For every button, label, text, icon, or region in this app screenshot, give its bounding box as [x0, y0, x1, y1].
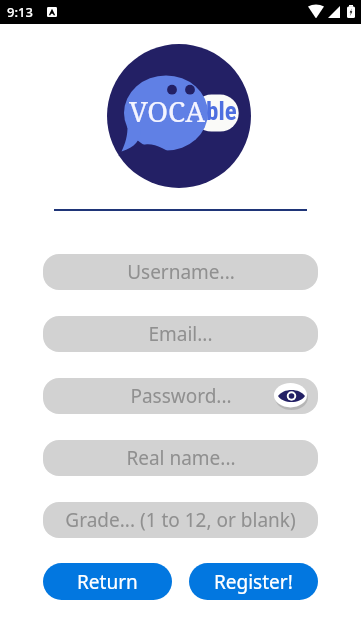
staticText: ble: [206, 97, 237, 126]
staticText: Grade... (1 to 12, or blank): [65, 507, 296, 533]
staticText: Username...: [127, 259, 235, 285]
staticText: Password...: [130, 383, 232, 409]
button[interactable]: Return: [43, 563, 172, 600]
button[interactable]: Show password: [274, 383, 308, 409]
button[interactable]: Username...: [43, 254, 318, 290]
staticText: Real name...: [126, 445, 236, 471]
staticText: Email...: [148, 321, 213, 347]
button[interactable]: Password...: [43, 378, 318, 414]
button[interactable]: Register!: [189, 563, 318, 600]
staticText: VOCA: [129, 92, 206, 130]
staticText: Register!: [214, 569, 293, 595]
button[interactable]: Email...: [43, 316, 318, 352]
button[interactable]: Grade... (1 to 12, or blank): [43, 502, 318, 538]
staticText: Return: [77, 569, 138, 595]
button[interactable]: Real name...: [43, 440, 318, 476]
staticText: 9:13: [7, 3, 33, 21]
